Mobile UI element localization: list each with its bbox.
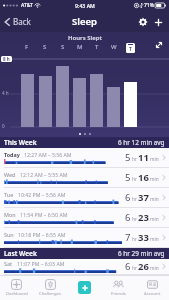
staticText: 11:54 PM – 6:50 AM bbox=[20, 211, 68, 218]
button[interactable]: Sat bbox=[0, 259, 169, 275]
staticText: 12:27 AM – 5:56 AM bbox=[24, 151, 72, 158]
staticText: hr bbox=[132, 156, 137, 163]
staticText: 11 bbox=[138, 151, 149, 164]
staticText: Mon bbox=[4, 211, 16, 218]
staticText: 33 bbox=[138, 231, 149, 244]
staticText: Sun bbox=[4, 231, 14, 238]
button[interactable]: Dashboard bbox=[0, 275, 33, 300]
staticText: 71% bbox=[144, 2, 154, 9]
staticText: This Week bbox=[4, 138, 37, 147]
staticText: hr bbox=[132, 196, 137, 203]
staticText: M bbox=[77, 43, 83, 51]
staticText: 37 bbox=[138, 191, 149, 204]
staticText: Tue bbox=[4, 191, 14, 198]
staticText: Dashboard bbox=[6, 291, 28, 297]
button[interactable]: Mon bbox=[0, 208, 169, 228]
staticText: min bbox=[150, 216, 159, 223]
staticText: T bbox=[129, 46, 132, 53]
staticText: hr bbox=[132, 216, 137, 223]
button[interactable]: Account bbox=[135, 275, 169, 300]
staticText: hr bbox=[132, 176, 137, 183]
staticText: 26 bbox=[138, 260, 149, 273]
staticText: 5 bbox=[125, 171, 131, 184]
staticText: min bbox=[150, 265, 159, 272]
staticText: min bbox=[150, 176, 159, 183]
staticText: 6 hr 29 min avg bbox=[118, 249, 165, 258]
button[interactable]: Friends bbox=[101, 275, 135, 300]
staticText: 6 bbox=[125, 260, 131, 273]
staticText: Account bbox=[144, 291, 161, 297]
staticText: Back bbox=[13, 16, 31, 27]
staticText: 10:42 PM – 5:56 AM bbox=[18, 191, 66, 198]
staticText: T bbox=[95, 43, 99, 51]
staticText: 9:43 AM bbox=[75, 2, 95, 9]
staticText: Challenges bbox=[39, 291, 62, 297]
staticText: F bbox=[25, 43, 29, 51]
staticText: S bbox=[61, 43, 65, 51]
staticText: 11:07 PM – 6:03 AM bbox=[17, 260, 65, 267]
button[interactable]: Challenges bbox=[33, 275, 67, 300]
staticText: min bbox=[150, 196, 159, 203]
staticText: Friends bbox=[111, 291, 126, 297]
staticText: 4 h bbox=[2, 90, 9, 96]
staticText: hr bbox=[132, 265, 137, 272]
staticText: 6 hr 12 min avg bbox=[118, 138, 165, 147]
staticText: 0 bbox=[2, 123, 5, 129]
staticText: 6 bbox=[125, 211, 131, 224]
staticText: hr bbox=[132, 236, 137, 243]
staticText: Sleep bbox=[72, 15, 97, 28]
staticText: 6 bbox=[125, 191, 131, 204]
staticText: W bbox=[111, 43, 117, 51]
button[interactable]: Wed bbox=[0, 168, 169, 188]
staticText: min bbox=[150, 156, 159, 163]
staticText: Last Week bbox=[4, 249, 37, 258]
staticText: AT&T bbox=[21, 2, 33, 9]
staticText: Sat bbox=[4, 260, 13, 267]
staticText: Wed bbox=[4, 171, 16, 178]
button[interactable]: Add bbox=[78, 281, 91, 294]
staticText: 10:18 PM – 6:55 AM bbox=[18, 231, 66, 238]
button[interactable]: Sun bbox=[0, 228, 169, 248]
button[interactable]: Tue bbox=[0, 188, 169, 208]
staticText: Hours Slept bbox=[68, 34, 102, 42]
staticText: min bbox=[150, 236, 159, 243]
staticText: 5 bbox=[125, 151, 131, 164]
staticText: 12:12 AM – 5:55 AM bbox=[20, 171, 68, 178]
staticText: 8 h bbox=[3, 56, 10, 62]
staticText: S bbox=[43, 43, 47, 51]
staticText: 7 bbox=[125, 231, 131, 244]
button[interactable]: Settings bbox=[134, 14, 152, 30]
button[interactable]: Expand chart bbox=[153, 39, 165, 51]
staticText: 16 bbox=[138, 171, 149, 184]
button[interactable]: Back bbox=[0, 13, 37, 30]
button[interactable]: Add sleep entry bbox=[152, 15, 169, 30]
staticText: Today bbox=[4, 151, 20, 158]
button[interactable]: Today bbox=[0, 148, 169, 168]
staticText: 23 bbox=[138, 211, 149, 224]
